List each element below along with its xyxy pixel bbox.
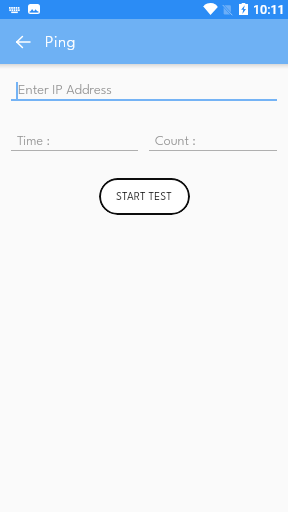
staticText: Count : (155, 135, 196, 148)
button[interactable]: Count : (149, 132, 277, 151)
button[interactable]: Time : (11, 132, 138, 151)
staticText: Ping (45, 35, 76, 50)
button[interactable]: START TEST (99, 178, 190, 215)
staticText: 10:11 (253, 2, 285, 17)
button[interactable]: Back (10, 29, 36, 55)
staticText: Enter IP Address (18, 84, 112, 97)
button[interactable]: Enter IP Address (11, 80, 277, 99)
staticText: Time : (17, 135, 50, 148)
staticText: START TEST (116, 192, 173, 202)
